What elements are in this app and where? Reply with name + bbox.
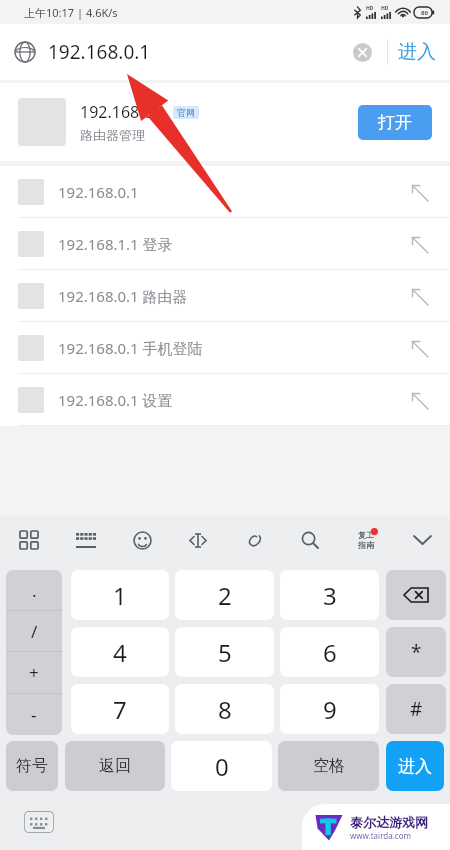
staticText: 8 (218, 693, 232, 726)
button[interactable]: Clear (345, 35, 379, 69)
staticText: 192.168.0.1 (80, 101, 167, 123)
button[interactable]: Hide keyboard (394, 516, 450, 564)
button[interactable]: Fill query (406, 179, 432, 205)
button[interactable]: Switch keyboard (24, 811, 54, 833)
button[interactable]: 空格 (278, 741, 379, 791)
staticText: 路由器管理 (80, 127, 145, 143)
button[interactable]: 192.168.0.1 手机登陆 (0, 322, 450, 373)
button[interactable]: 打开 (358, 105, 432, 140)
staticText: 80 (421, 9, 428, 17)
staticText: 192.168.1.1 登录 (58, 234, 406, 254)
staticText: 指南 (358, 540, 374, 550)
staticText: 6 (323, 636, 337, 669)
staticText: 192.168.0.1 路由器 (58, 286, 406, 306)
button[interactable]: Text edit (170, 516, 226, 564)
button[interactable]: Fill query (406, 387, 432, 413)
staticText: 0 (215, 750, 229, 783)
button[interactable]: 进入 (398, 40, 436, 64)
staticText: . (32, 579, 37, 602)
button[interactable]: Fill query (406, 283, 432, 309)
button[interactable]: 6 (280, 627, 379, 677)
staticText: * (411, 639, 422, 665)
button[interactable]: 进入 (386, 741, 444, 791)
staticText: 2 (218, 579, 232, 612)
button[interactable]: / (6, 611, 62, 651)
staticText: 9 (323, 693, 337, 726)
button[interactable]: 符号 (6, 741, 58, 791)
button[interactable]: 192.168.0.1 设置 (0, 374, 450, 425)
button[interactable]: # (386, 684, 446, 734)
button[interactable]: 0 (171, 741, 272, 791)
staticText: 空格 (313, 756, 345, 776)
staticText: 192.168.0.1 手机登陆 (58, 338, 406, 358)
button[interactable]: 8 (175, 684, 274, 734)
staticText: - (31, 703, 37, 726)
staticText: + (29, 661, 39, 684)
button[interactable]: 192.168.0.1 (0, 83, 450, 161)
staticText: 打开 (378, 112, 412, 133)
button[interactable]: - (6, 694, 62, 735)
staticText: 5 (218, 636, 232, 669)
staticText: 3 (323, 579, 337, 612)
staticText: HD (366, 5, 374, 12)
button[interactable]: 5 (175, 627, 274, 677)
button[interactable]: 返回 (65, 741, 165, 791)
staticText: 192.168.0.1 (58, 182, 406, 202)
staticText: 192.168.0.1 设置 (58, 390, 406, 410)
button[interactable]: Emoji (114, 516, 170, 564)
button[interactable]: 9 (280, 684, 379, 734)
button[interactable]: 192.168.1.1 登录 (0, 218, 450, 269)
staticText: 1 (113, 579, 127, 612)
staticText: www.tairda.com (350, 830, 411, 841)
button[interactable]: 3 (280, 570, 379, 620)
button[interactable]: Keyboard layout (57, 516, 114, 564)
staticText: # (410, 696, 423, 722)
button[interactable]: Apps (0, 516, 57, 564)
button[interactable]: + (6, 652, 62, 693)
staticText: 上午10:17 | 4.6K/s (24, 5, 118, 20)
button[interactable]: * (386, 627, 446, 677)
staticText: 进入 (398, 40, 436, 64)
button[interactable]: 2 (175, 570, 274, 620)
button[interactable]: Backspace (386, 570, 446, 620)
button[interactable]: Guide (338, 516, 394, 564)
button[interactable]: Search (282, 516, 338, 564)
staticText: / (31, 620, 38, 643)
button[interactable]: Fill query (406, 335, 432, 361)
staticText: 符号 (16, 756, 48, 776)
staticText: 返回 (99, 756, 131, 776)
staticText: 192.168.0.1 (48, 39, 345, 65)
staticText: 复工 (358, 530, 374, 540)
button[interactable]: Fill query (406, 231, 432, 257)
button[interactable]: . (6, 570, 62, 610)
button[interactable]: 7 (71, 684, 169, 734)
button[interactable]: 4 (71, 627, 169, 677)
button[interactable]: 192.168.0.1 路由器 (0, 270, 450, 321)
button[interactable]: 1 (71, 570, 169, 620)
button[interactable]: Clipboard (226, 516, 282, 564)
staticText: 泰尔达游戏网 (350, 814, 428, 830)
staticText: 4 (113, 636, 127, 669)
staticText: 进入 (398, 756, 432, 777)
staticText: 官网 (177, 107, 195, 118)
button[interactable]: 192.168.0.1 (0, 166, 450, 217)
staticText: HD (381, 5, 389, 12)
staticText: 7 (113, 693, 127, 726)
